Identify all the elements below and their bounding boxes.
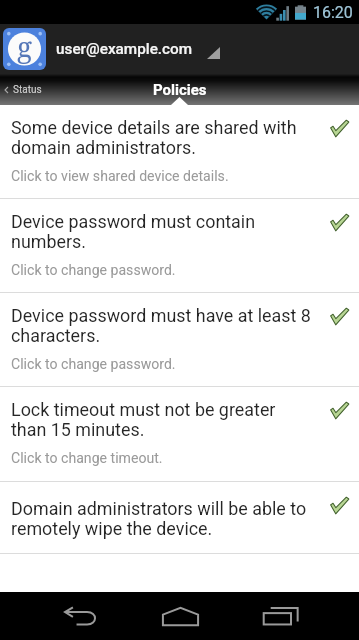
button[interactable]: g bbox=[0, 24, 359, 74]
button[interactable]: Recent apps bbox=[230, 592, 330, 640]
staticText: Domain administrators will be able to re… bbox=[11, 498, 314, 540]
button[interactable]: Back bbox=[30, 592, 130, 640]
staticText: user@example.com bbox=[56, 40, 193, 58]
button[interactable]: Some device details are shared with doma… bbox=[0, 105, 359, 198]
button[interactable]: Home bbox=[130, 592, 230, 640]
button[interactable]: Domain administrators will be able to re… bbox=[0, 482, 359, 553]
button[interactable]: Lock timeout must not be greater than 15… bbox=[0, 387, 359, 481]
button[interactable]: Device password must contain numbers. bbox=[0, 199, 359, 292]
staticText: Click to change password. bbox=[11, 356, 176, 373]
staticText: Click to change password. bbox=[11, 262, 176, 279]
staticText: Policies bbox=[153, 81, 207, 99]
staticText: Lock timeout must not be greater than 15… bbox=[11, 399, 314, 441]
staticText: Device password must contain numbers. bbox=[11, 211, 314, 253]
staticText: Click to change timeout. bbox=[11, 450, 163, 467]
button[interactable]: Status bbox=[0, 74, 112, 105]
button[interactable]: Policies bbox=[112, 74, 247, 105]
staticText: g bbox=[17, 28, 33, 65]
staticText: Status bbox=[13, 84, 42, 96]
staticText: 16:20 bbox=[313, 3, 353, 22]
button[interactable]: Device password must have at least 8 cha… bbox=[0, 293, 359, 386]
staticText: Click to view shared device details. bbox=[11, 168, 229, 185]
staticText: Device password must have at least 8 cha… bbox=[11, 305, 314, 347]
staticText: Some device details are shared with doma… bbox=[11, 117, 314, 159]
